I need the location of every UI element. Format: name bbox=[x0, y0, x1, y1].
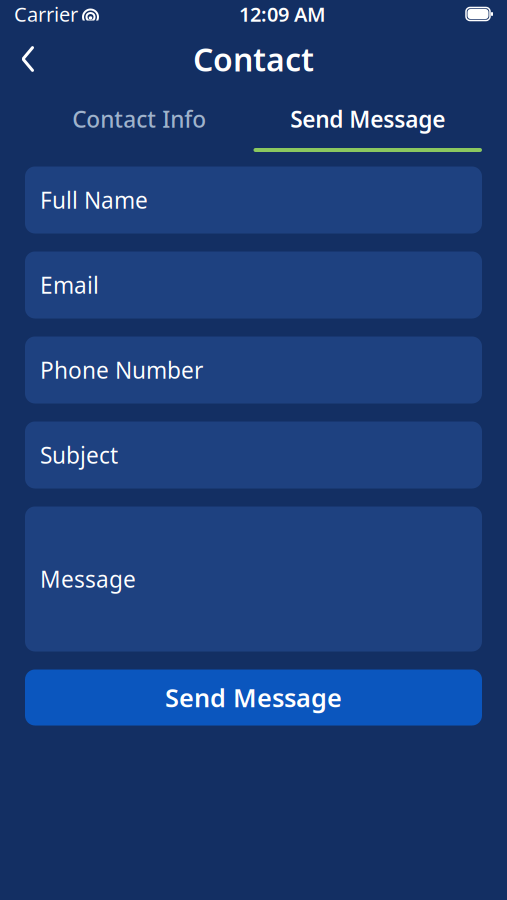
button[interactable]: Contact Info bbox=[25, 90, 253, 152]
staticText: Carrier bbox=[14, 1, 78, 27]
staticText bbox=[77, 0, 83, 29]
staticText: Message bbox=[40, 564, 136, 594]
button[interactable]: Back bbox=[6, 37, 50, 81]
staticText: Email bbox=[40, 270, 99, 300]
staticText: Full Name bbox=[40, 185, 148, 215]
button[interactable]: Send Message bbox=[253, 90, 482, 152]
staticText: Subject bbox=[40, 440, 118, 470]
staticText: Send Message bbox=[165, 681, 342, 714]
staticText: Send Message bbox=[290, 104, 445, 134]
staticText: Contact Info bbox=[72, 104, 206, 134]
staticText: Phone Number bbox=[40, 355, 203, 385]
button[interactable]: Send Message bbox=[25, 669, 482, 725]
staticText: 12:09 AM bbox=[239, 1, 326, 27]
staticText: Contact bbox=[193, 38, 314, 80]
